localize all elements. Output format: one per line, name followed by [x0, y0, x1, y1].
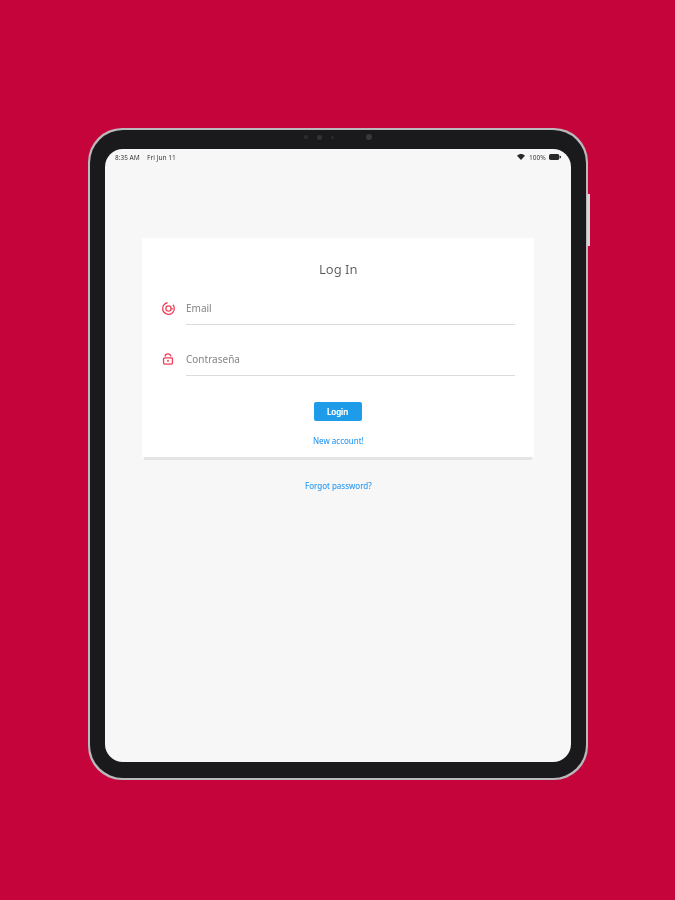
staticText: 100% — [529, 153, 546, 162]
staticText: 8:35 AM — [115, 153, 140, 162]
staticText: New account! — [313, 435, 364, 446]
other: Email — [161, 301, 175, 315]
staticText: Log In — [319, 260, 358, 278]
button[interactable]: Login — [314, 402, 362, 421]
staticText: Login — [327, 406, 349, 417]
button[interactable]: New account! — [307, 433, 370, 448]
other: Password — [161, 352, 175, 366]
staticText: Forgot password? — [305, 480, 372, 491]
staticText: Email — [186, 301, 212, 315]
staticText: Contraseña — [186, 352, 240, 366]
button[interactable]: Forgot password? — [297, 476, 380, 495]
staticText: Fri Jun 11 — [147, 153, 176, 162]
